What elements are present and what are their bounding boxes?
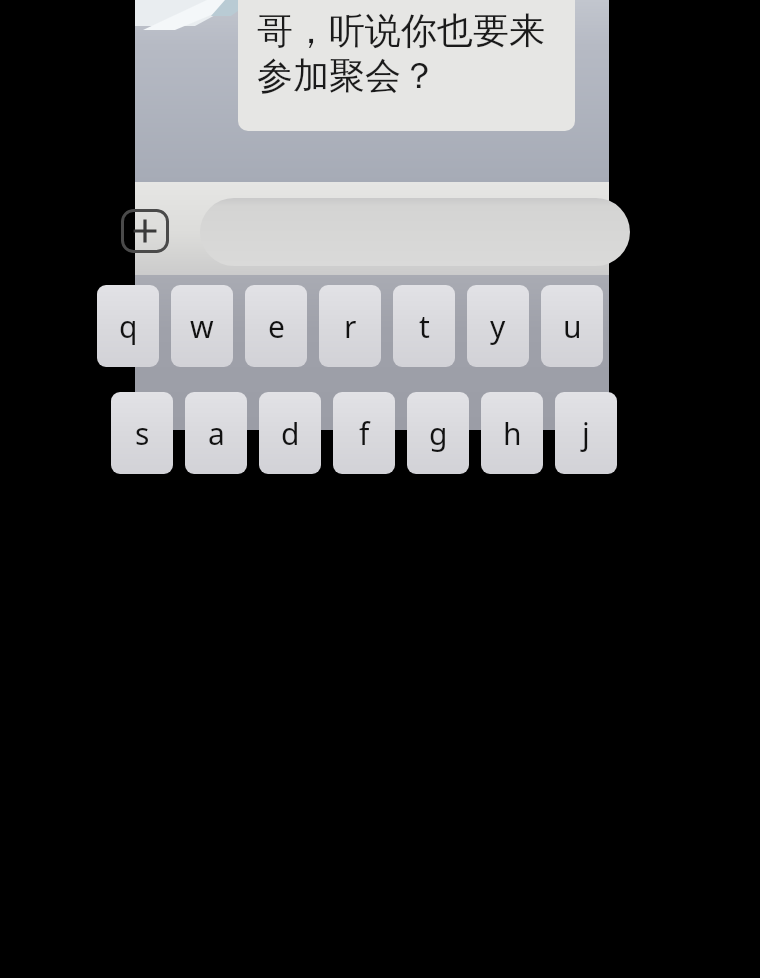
button[interactable]: y: [467, 285, 529, 367]
button[interactable]: g: [407, 392, 469, 474]
staticText: 哥，听说你也要来 参加聚会？: [257, 8, 557, 98]
staticText: f: [359, 413, 370, 454]
button[interactable]: 哥，听说你也要来 参加聚会？: [238, 0, 575, 131]
button[interactable]: q: [97, 285, 159, 367]
staticText: a: [208, 413, 225, 454]
button[interactable]: t: [393, 285, 455, 367]
button[interactable]: s: [111, 392, 173, 474]
button[interactable]: h: [481, 392, 543, 474]
staticText: u: [563, 306, 582, 347]
staticText: s: [135, 413, 150, 454]
staticText: q: [119, 306, 138, 347]
button[interactable]: e: [245, 285, 307, 367]
button[interactable]: f: [333, 392, 395, 474]
button[interactable]: d: [259, 392, 321, 474]
button[interactable]: j: [555, 392, 617, 474]
staticText: h: [503, 413, 522, 454]
button[interactable]: a: [185, 392, 247, 474]
button[interactable]: Add attachment: [121, 209, 169, 253]
staticText: w: [190, 306, 214, 347]
staticText: y: [490, 306, 506, 347]
button[interactable]: [200, 198, 630, 266]
staticText: d: [281, 413, 300, 454]
staticText: e: [268, 306, 285, 347]
button[interactable]: w: [171, 285, 233, 367]
staticText: g: [429, 413, 448, 454]
staticText: t: [419, 306, 430, 347]
staticText: j: [582, 413, 590, 454]
button[interactable]: r: [319, 285, 381, 367]
button[interactable]: u: [541, 285, 603, 367]
staticText: r: [344, 306, 357, 347]
